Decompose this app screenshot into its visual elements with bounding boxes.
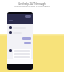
button[interactable]: New chat — [25, 15, 31, 18]
staticText: conversations with a chat agent — [14, 4, 50, 7]
staticText: Get help 24/7 through — [18, 2, 46, 6]
